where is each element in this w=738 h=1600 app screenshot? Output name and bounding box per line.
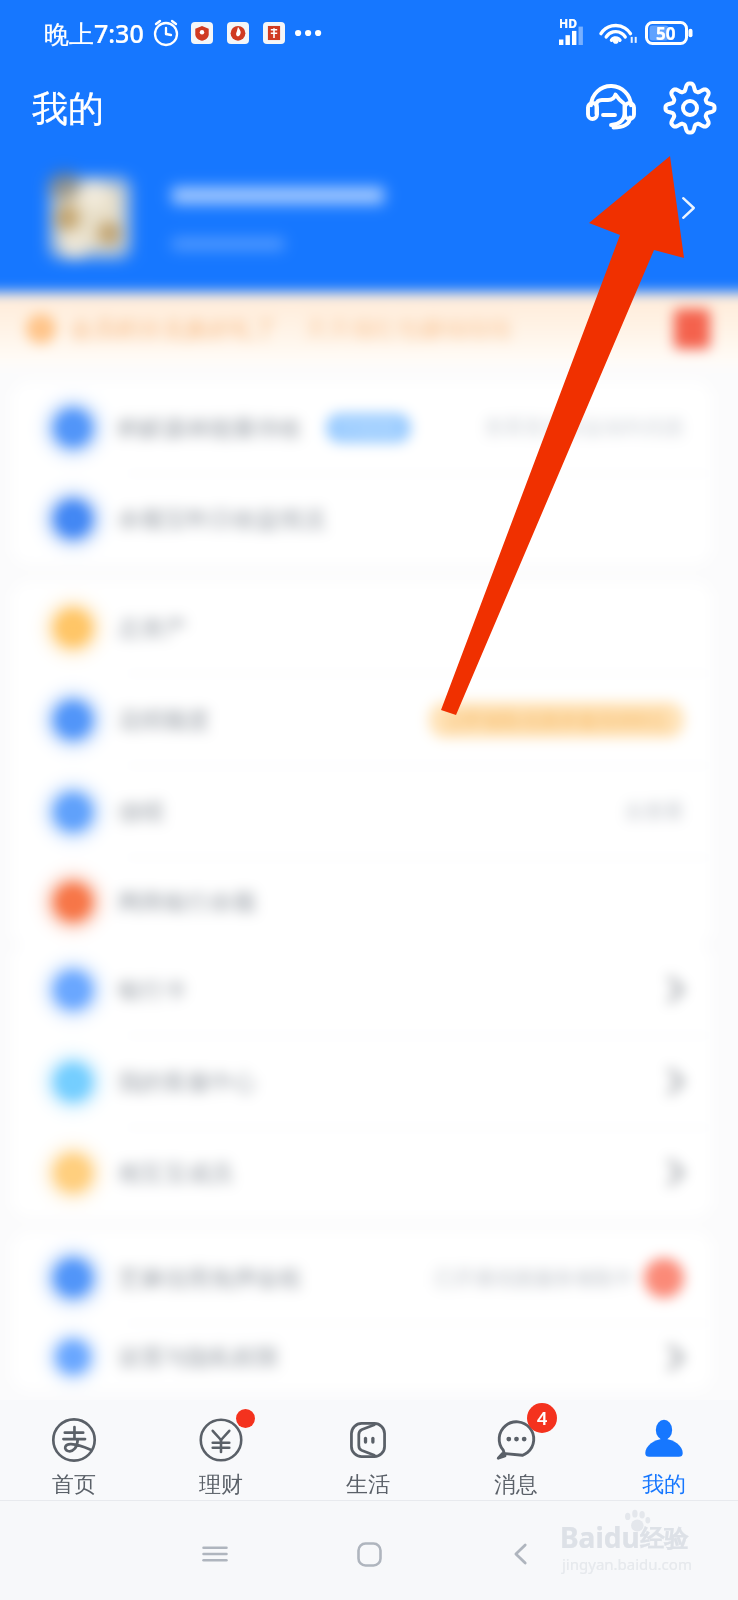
button[interactable]: 理财 xyxy=(147,1400,294,1500)
staticText: 借呗 xyxy=(118,798,164,827)
staticText: 芝麻信用免押金租 xyxy=(118,1264,302,1293)
staticText: 可收取 xyxy=(340,416,397,440)
staticText: 我的客服中心 xyxy=(118,1068,256,1097)
staticText: jingyan.baidu.com xyxy=(562,1554,692,1574)
button[interactable]: Home xyxy=(351,1536,387,1572)
staticText: 生活 xyxy=(346,1471,390,1499)
button[interactable]: Customer service xyxy=(576,73,646,143)
staticText: 经验 xyxy=(640,1524,688,1554)
staticText: 余额宝昨日收益情况 xyxy=(118,505,325,534)
button[interactable]: Menu xyxy=(197,1536,233,1572)
staticText: 4 xyxy=(537,1406,548,1431)
staticText: 我的 xyxy=(642,1471,686,1499)
button[interactable]: 我的 xyxy=(590,1400,738,1500)
staticText: 总资产 xyxy=(118,614,187,643)
button[interactable]: Back xyxy=(503,1536,539,1572)
button[interactable]: 4 xyxy=(442,1400,590,1500)
staticText: 网商银行余额 xyxy=(118,888,256,917)
staticText: 银行卡 xyxy=(118,976,187,1005)
staticText: 理财 xyxy=(199,1471,243,1499)
staticText: 已开通优惠服务领取中 xyxy=(434,1266,634,1291)
staticText: 50 xyxy=(656,22,676,45)
staticText: 花呗额度 xyxy=(118,706,210,735)
staticText: 去查看 xyxy=(624,799,684,824)
staticText: 消息 xyxy=(494,1471,538,1499)
button[interactable]: Open profile xyxy=(664,184,712,232)
staticText: 蚂蚁森林能量待收 xyxy=(118,414,302,443)
button[interactable]: 生活 xyxy=(294,1400,442,1500)
staticText: 我的 xyxy=(32,86,104,131)
staticText: 首页 xyxy=(52,1471,96,1499)
staticText: 立即领取优惠券最高888元 xyxy=(445,707,668,733)
staticText: 会员积分兑换好礼了 xyxy=(70,315,277,344)
staticText: 相互宝成员 xyxy=(118,1159,233,1188)
staticText: 天天领红包赚钱啦啦 xyxy=(305,315,512,344)
staticText: HD xyxy=(559,15,577,31)
staticText: 晚上7:30 xyxy=(44,16,144,50)
button[interactable]: Settings xyxy=(655,73,725,143)
staticText: 查看更多权益福利优惠 xyxy=(484,415,684,440)
staticText: 设置与隐私权限 xyxy=(118,1343,279,1372)
button[interactable]: 首页 xyxy=(0,1400,147,1500)
staticText: Baidu xyxy=(560,1518,640,1556)
